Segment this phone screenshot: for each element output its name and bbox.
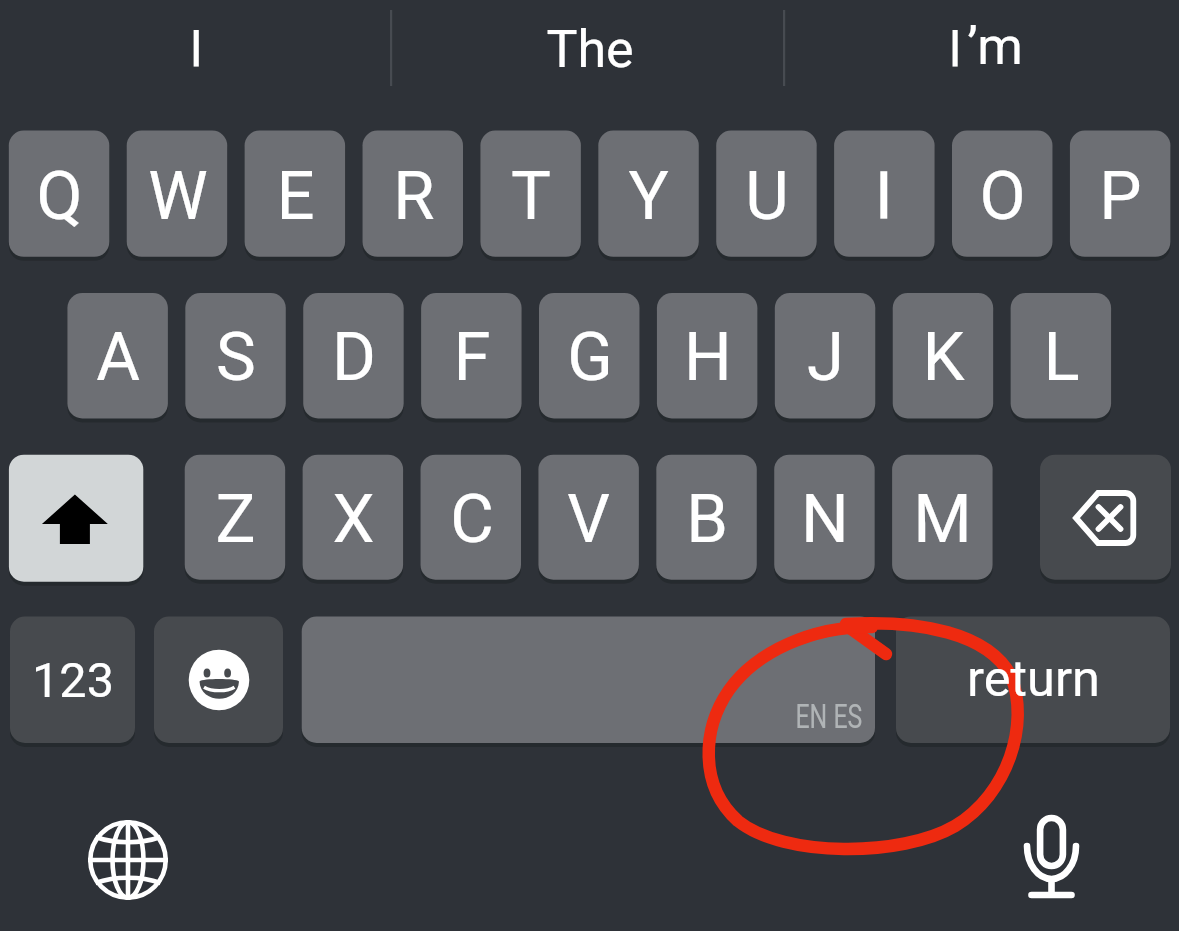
staticText: return — [967, 649, 1100, 708]
staticText: Y — [628, 157, 669, 236]
staticText: X — [332, 480, 375, 559]
button[interactable]: G — [539, 293, 640, 418]
staticText: P — [1099, 157, 1142, 236]
staticText: C — [450, 480, 494, 559]
staticText: E — [276, 157, 315, 236]
staticText: T — [511, 157, 551, 236]
staticText: K — [922, 318, 965, 397]
button[interactable]: A — [67, 293, 168, 418]
button[interactable]: E — [245, 131, 346, 257]
button[interactable]: Voice input — [1001, 810, 1101, 910]
staticText: A — [96, 318, 140, 397]
staticText: M — [913, 480, 972, 559]
staticText: Q — [36, 157, 83, 236]
staticText: U — [745, 157, 789, 236]
button[interactable]: P — [1070, 131, 1171, 257]
button[interactable]: Z — [185, 455, 286, 580]
staticText: J — [807, 318, 844, 397]
button[interactable]: Q — [9, 131, 110, 257]
staticText: W — [148, 157, 208, 236]
button[interactable]: S — [185, 293, 286, 418]
button[interactable]: H — [657, 293, 758, 418]
button[interactable]: K — [893, 293, 994, 418]
button[interactable]: Switch keyboard — [78, 810, 178, 910]
button[interactable]: The — [393, 0, 786, 98]
button[interactable]: X — [303, 455, 404, 580]
staticText: V — [567, 480, 610, 559]
button[interactable]: return — [896, 617, 1170, 743]
button[interactable]: B — [656, 455, 757, 580]
button[interactable]: ’m — [786, 0, 1179, 98]
button[interactable]: Backspace — [1040, 455, 1171, 580]
button[interactable]: U — [716, 131, 817, 257]
staticText: ’m — [967, 16, 1023, 77]
button[interactable]: Y — [598, 131, 699, 257]
button[interactable]: F — [421, 293, 522, 418]
staticText: O — [979, 157, 1026, 236]
button[interactable]: M — [892, 455, 993, 580]
staticText: R — [393, 157, 435, 236]
button[interactable]: D — [303, 293, 404, 418]
button[interactable]: 123 — [10, 617, 135, 743]
button[interactable]: Shift — [9, 455, 142, 580]
staticText: S — [216, 318, 256, 397]
button[interactable]: C — [421, 455, 522, 580]
staticText: F — [453, 318, 491, 397]
staticText: L — [1043, 318, 1080, 397]
button[interactable]: W — [127, 131, 228, 257]
button[interactable]: Space — [302, 617, 875, 743]
button[interactable]: N — [774, 455, 875, 580]
staticText: H — [684, 318, 732, 397]
button[interactable]: Emoji — [154, 617, 283, 743]
staticText: The — [546, 19, 634, 80]
button[interactable] — [0, 0, 393, 98]
staticText: EN ES — [795, 696, 863, 736]
button[interactable]: T — [480, 131, 581, 257]
staticText: B — [686, 480, 728, 559]
staticText: Z — [215, 480, 256, 559]
staticText: D — [332, 318, 376, 397]
button[interactable] — [834, 131, 935, 257]
staticText: G — [567, 318, 613, 397]
button[interactable]: V — [538, 455, 639, 580]
staticText: N — [801, 480, 849, 559]
staticText: 123 — [32, 652, 114, 709]
button[interactable]: O — [952, 131, 1053, 257]
button[interactable]: L — [1011, 293, 1112, 418]
button[interactable]: R — [363, 131, 464, 257]
button[interactable]: J — [775, 293, 876, 418]
